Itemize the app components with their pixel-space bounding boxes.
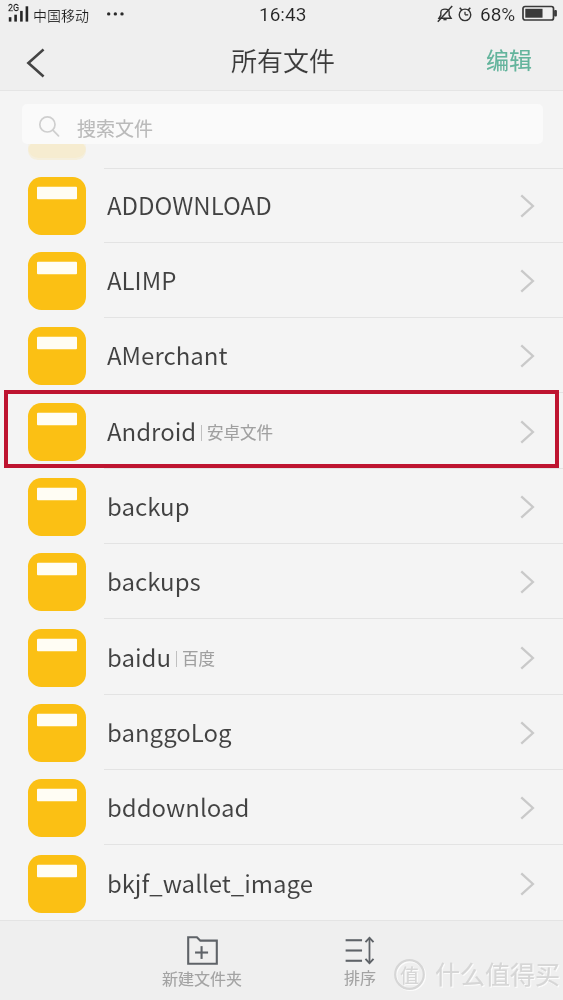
button[interactable]: ADDOWNLOAD	[0, 168, 563, 243]
button[interactable]: ALIMP	[0, 243, 563, 318]
staticText: Android	[107, 413, 197, 448]
staticText: AMerchant	[107, 337, 228, 372]
staticText: bkjf_wallet_image	[107, 865, 314, 900]
button[interactable]: Android	[0, 394, 563, 469]
staticText: 16:43	[259, 3, 307, 25]
staticText: ADDOWNLOAD	[107, 187, 272, 222]
staticText: ALIMP	[107, 262, 177, 297]
staticText: 中国移动	[33, 5, 89, 25]
staticText: 什么值得买	[436, 956, 562, 992]
staticText: baidu	[107, 639, 172, 674]
staticText: banggoLog	[107, 714, 232, 749]
button[interactable]: backup	[0, 469, 563, 544]
staticText: 2G	[8, 3, 20, 14]
staticText: 安卓文件	[207, 420, 273, 444]
button[interactable]: bddownload	[0, 770, 563, 845]
button[interactable]: bkjf_wallet_image	[0, 846, 563, 920]
button[interactable]: baidu	[0, 620, 563, 695]
staticText: 搜索文件	[77, 114, 154, 142]
staticText: 值	[400, 961, 420, 989]
staticText: bddownload	[107, 789, 250, 824]
button[interactable]: banggoLog	[0, 695, 563, 770]
button[interactable]: Back	[0, 35, 70, 91]
staticText: 值	[401, 962, 421, 990]
staticText: 新建文件夹	[162, 966, 243, 989]
button[interactable]: 编辑	[474, 35, 544, 91]
button[interactable]: 排序	[300, 937, 420, 1000]
button[interactable]: AMerchant	[0, 318, 563, 393]
button[interactable]: 新建文件夹	[142, 936, 262, 1000]
button[interactable]	[22, 104, 543, 144]
staticText: 编辑	[486, 42, 532, 75]
staticText: backup	[107, 488, 190, 523]
staticText: 什么值得买	[435, 955, 561, 991]
staticText: 所有文件	[231, 41, 336, 79]
button[interactable]: backups	[0, 544, 563, 619]
staticText: 68%	[480, 3, 516, 25]
staticText: backups	[107, 563, 201, 598]
staticText: 百度	[182, 646, 215, 670]
staticText: 排序	[344, 965, 377, 988]
